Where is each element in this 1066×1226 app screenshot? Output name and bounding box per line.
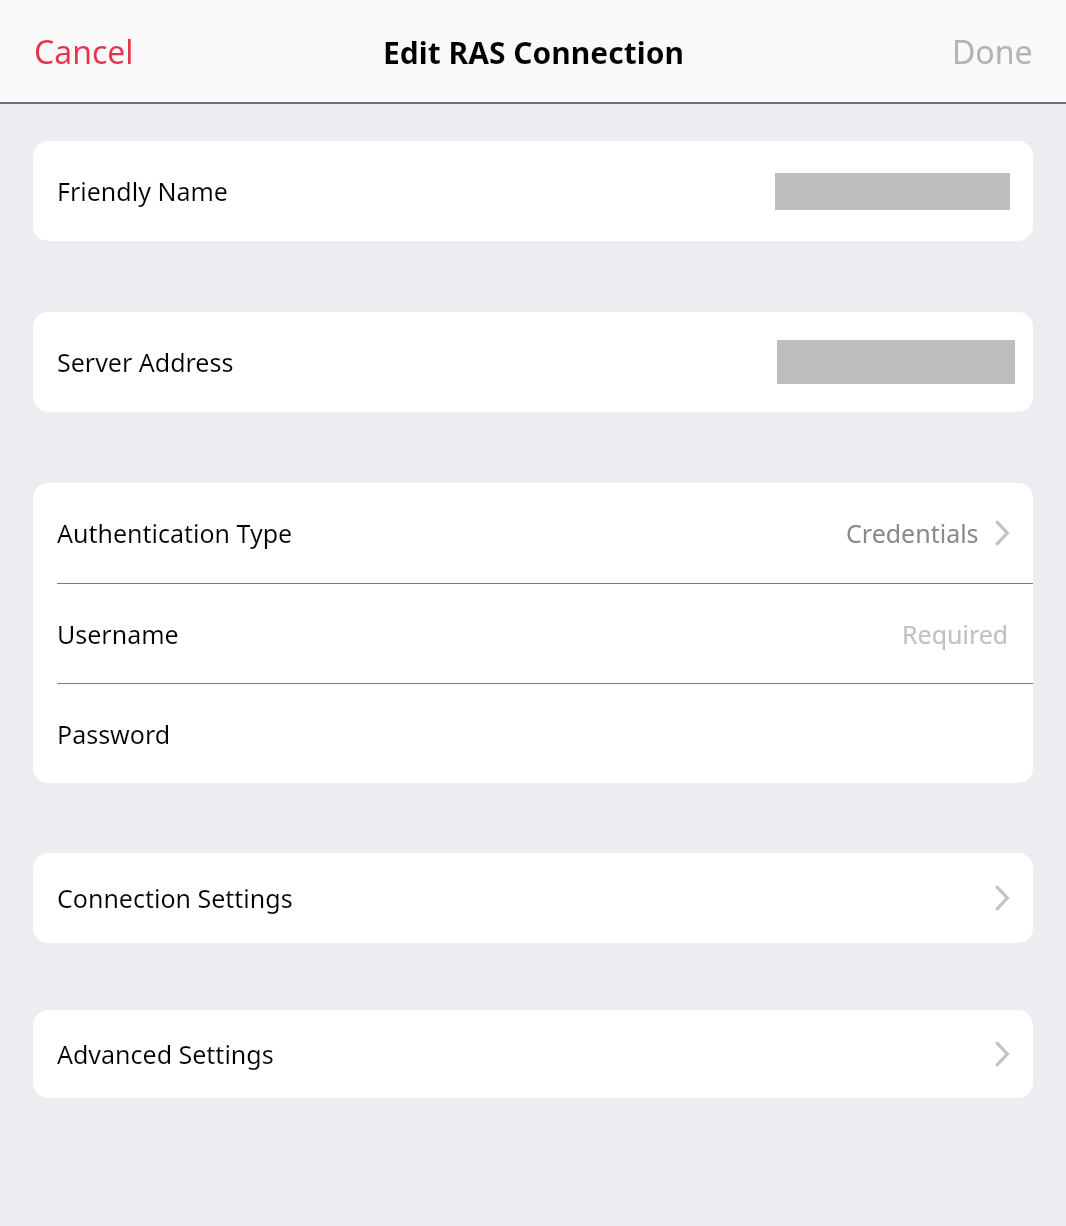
other: Open — [995, 1041, 1009, 1067]
staticText: Connection Settings — [57, 881, 293, 915]
other: Open — [995, 885, 1009, 911]
button[interactable]: Cancel — [0, 20, 154, 84]
staticText: Friendly Name — [57, 174, 228, 208]
button[interactable]: Authentication Type — [33, 483, 1033, 583]
staticText: Password — [57, 717, 171, 751]
other: Open — [995, 520, 1009, 546]
button[interactable]: Connection Settings — [33, 853, 1033, 943]
button[interactable]: Password — [33, 684, 1033, 783]
staticText: Authentication Type — [57, 516, 293, 550]
staticText: Done — [952, 30, 1033, 74]
staticText: Cancel — [34, 30, 134, 74]
staticText: Username — [57, 617, 179, 651]
staticText: Advanced Settings — [57, 1037, 274, 1071]
button[interactable]: Done — [932, 20, 1066, 84]
staticText: Credentials — [846, 516, 979, 550]
staticText: Server Address — [57, 345, 234, 379]
staticText: Edit RAS Connection — [383, 32, 684, 73]
staticText: Required — [902, 617, 1009, 651]
button[interactable]: Advanced Settings — [33, 1010, 1033, 1098]
button[interactable]: Username — [33, 584, 1033, 683]
